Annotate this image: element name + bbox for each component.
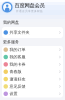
button[interactable]: 我的订单	[2, 46, 63, 53]
staticText: 更多服务	[3, 39, 19, 44]
staticText: 我的客服	[9, 55, 25, 59]
staticText: 青春版	[9, 69, 21, 74]
button[interactable]: 设置	[2, 90, 63, 97]
button[interactable]: 共享文件夹	[2, 29, 63, 36]
staticText: 意见反馈	[9, 84, 25, 89]
button[interactable]: 青春版	[2, 68, 63, 75]
staticText: 设置	[9, 91, 17, 96]
staticText: 我的卡券	[9, 62, 25, 67]
button[interactable]: 邀请好友	[2, 75, 63, 83]
staticText: 开通会员享更多权益	[16, 9, 43, 13]
button[interactable]: 我的卡券	[2, 61, 63, 68]
button[interactable]: 意见反馈	[2, 83, 63, 90]
button[interactable]: 我的客服	[2, 53, 63, 61]
staticText: 我的订单	[9, 47, 25, 52]
staticText: 共享文件夹	[9, 30, 29, 35]
staticText: 我的网盘	[3, 20, 19, 25]
staticText: 邀请好友	[9, 77, 25, 81]
staticText: 百度网盘会员	[14, 2, 44, 9]
